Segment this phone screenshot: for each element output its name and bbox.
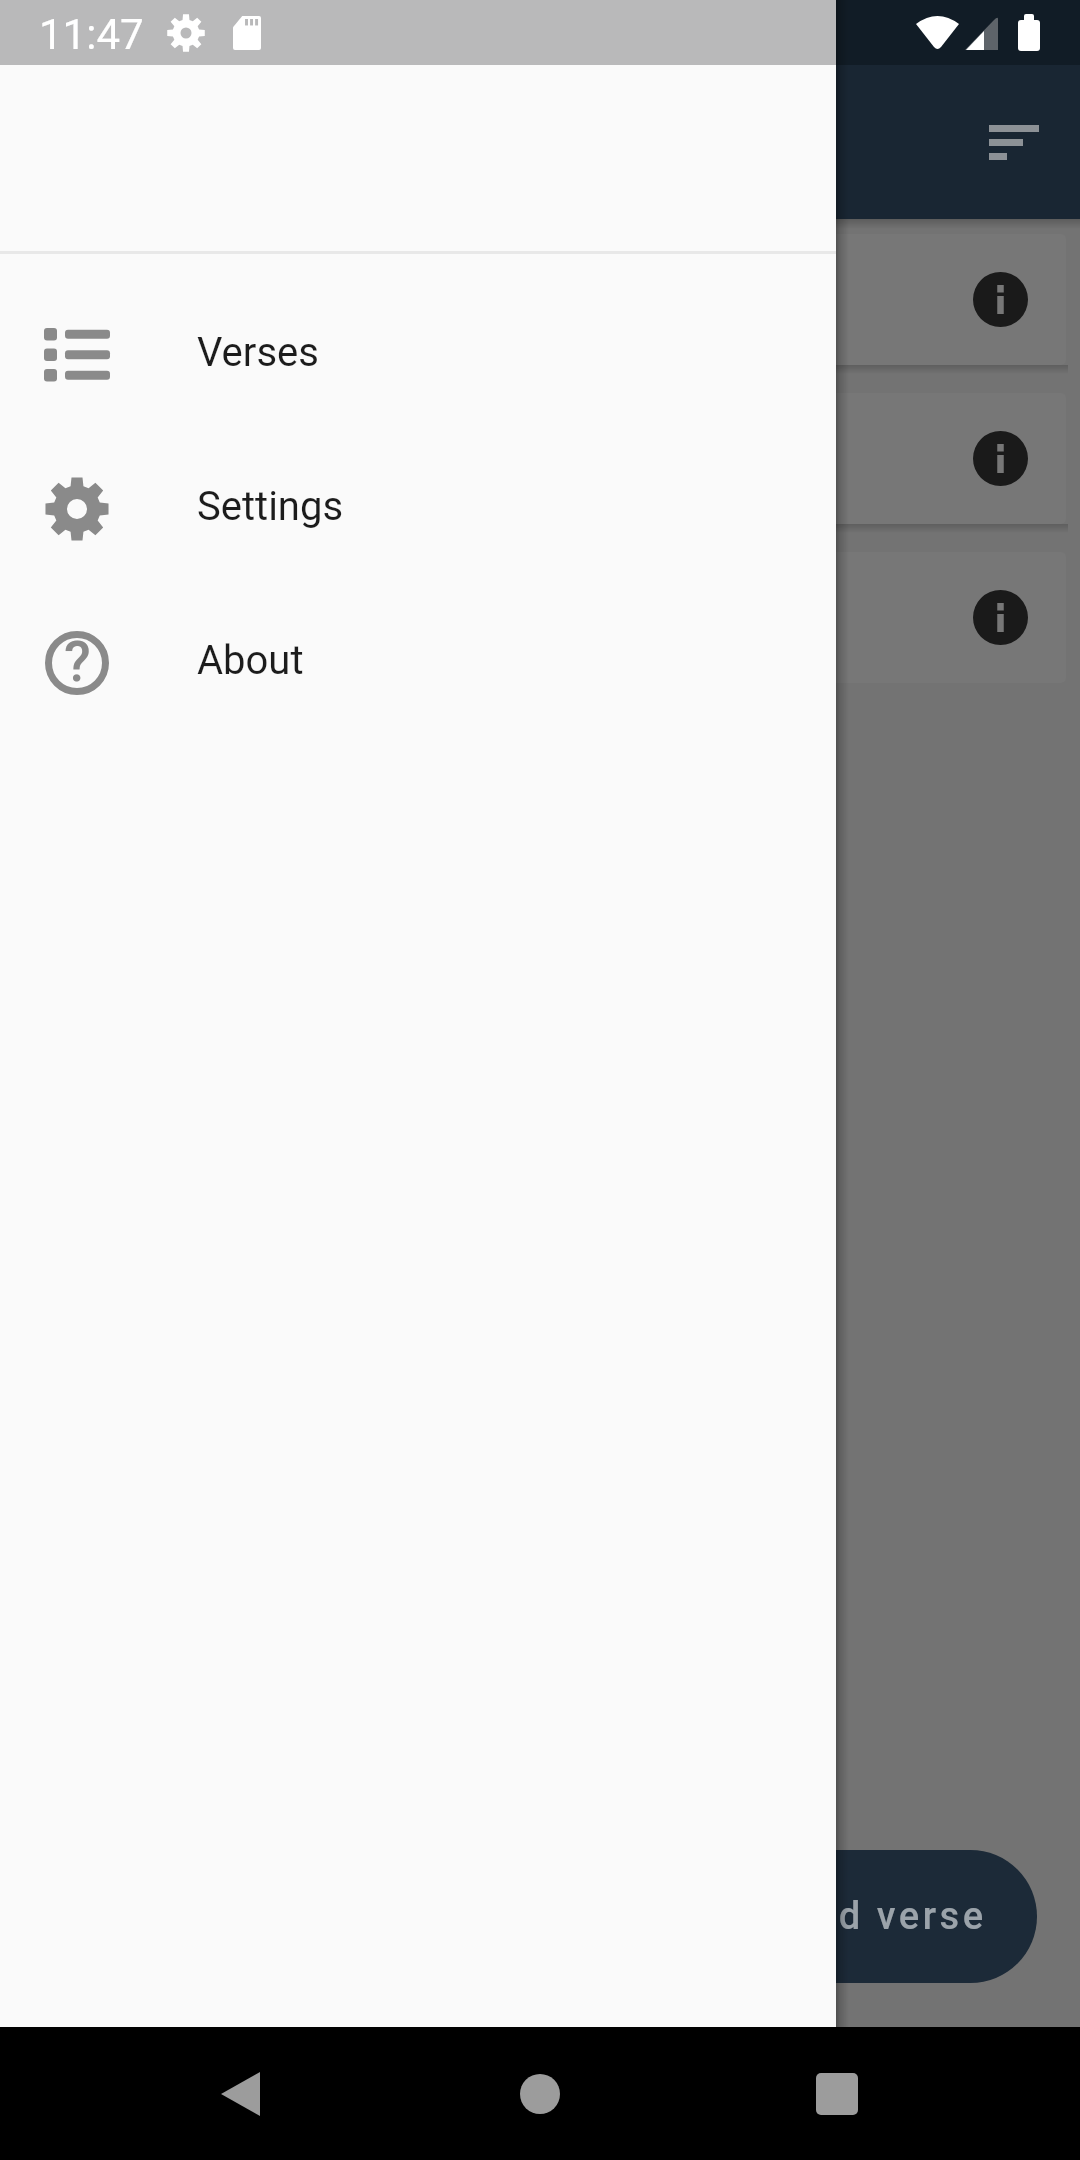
button[interactable]: Settings	[0, 428, 836, 582]
staticText: Verses	[197, 329, 319, 376]
button[interactable]: Back	[180, 2034, 300, 2154]
button[interactable]: Home	[480, 2034, 600, 2154]
button[interactable]: Verses	[0, 274, 836, 428]
button[interactable]: Recents	[777, 2034, 897, 2154]
staticText: About	[197, 637, 304, 684]
button[interactable]: Sort	[964, 92, 1064, 192]
button[interactable]: Add verse	[735, 1850, 1037, 1983]
button[interactable]: Info	[14, 234, 1066, 365]
staticText: Add verse	[785, 1894, 987, 1939]
button[interactable]: Info	[973, 431, 1028, 486]
button[interactable]: Info	[973, 272, 1028, 327]
staticText: ?	[64, 630, 91, 694]
staticText: 11:47	[39, 10, 144, 59]
button[interactable]: ?	[0, 582, 836, 736]
button[interactable]: Info	[973, 590, 1028, 645]
button[interactable]: Info	[14, 552, 1066, 683]
button[interactable]: Info	[14, 393, 1066, 524]
staticText: Settings	[197, 483, 344, 530]
